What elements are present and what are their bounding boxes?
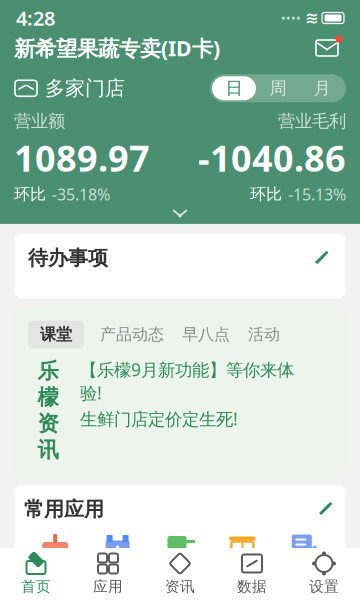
staticText: 4:28 xyxy=(16,5,55,31)
button[interactable]: 日 xyxy=(212,76,256,100)
button[interactable]: 产品动态 xyxy=(98,320,166,348)
button[interactable]: 调拨出库 xyxy=(149,531,211,585)
staticText: 调拨收货 xyxy=(88,567,148,585)
button[interactable]: 消息 xyxy=(308,32,346,64)
staticText: 乐檬 xyxy=(37,358,58,410)
button[interactable]: 月 xyxy=(300,76,344,100)
staticText: 营业额 xyxy=(14,111,65,132)
button[interactable]: 数据 xyxy=(216,546,288,600)
button[interactable]: 展开 xyxy=(0,205,360,224)
staticText: 产品动态 xyxy=(100,324,164,344)
staticText: 多家门店 xyxy=(45,76,125,101)
button[interactable]: 多家门店 xyxy=(14,74,125,103)
staticText: 环比 xyxy=(14,184,46,204)
staticText: •••• xyxy=(281,10,301,26)
staticText: -15.13% xyxy=(288,184,346,205)
staticText: 课堂 xyxy=(40,324,72,344)
staticText: 1089.97 xyxy=(14,134,150,182)
button[interactable]: 调拨收货 xyxy=(86,531,149,585)
button[interactable]: 乐檬 xyxy=(28,358,332,463)
staticText: 库存调整 xyxy=(212,567,272,585)
staticText: 应用 xyxy=(93,577,123,595)
button[interactable]: 编辑 xyxy=(310,247,332,269)
staticText: 【乐檬9月新功能】等你来体验! xyxy=(80,358,294,404)
button[interactable]: 早八点 xyxy=(180,320,232,348)
staticText: 生鲜门店定价定生死! xyxy=(80,407,238,430)
staticText: 周 xyxy=(269,78,286,99)
button[interactable]: 应用 xyxy=(72,546,144,600)
staticText: ≋ xyxy=(305,9,318,27)
staticText: 新希望果蔬专卖(ID卡) xyxy=(14,34,220,62)
button[interactable]: 库存盘点 xyxy=(274,531,336,585)
button[interactable]: 周 xyxy=(256,76,300,100)
staticText: 库存盘点 xyxy=(275,567,335,585)
button[interactable]: 待办事项 xyxy=(14,234,346,298)
staticText: 门店补货 xyxy=(25,567,85,585)
staticText: 常用应用 xyxy=(24,497,104,521)
staticText: 首页 xyxy=(21,577,51,595)
button[interactable]: 首页 xyxy=(0,546,72,600)
staticText: 资讯 xyxy=(165,577,195,595)
staticText: 环比 xyxy=(250,184,282,204)
button[interactable]: 活动 xyxy=(246,320,282,348)
staticText: 早八点 xyxy=(182,324,230,344)
staticText: 数据 xyxy=(237,577,267,595)
staticText: 活动 xyxy=(248,324,280,344)
staticText: 待办事项 xyxy=(28,246,108,270)
staticText: 月 xyxy=(313,78,330,99)
staticText: 调拨出库 xyxy=(150,567,210,585)
staticText: 营业毛利 xyxy=(278,111,346,132)
button[interactable]: 库存调整 xyxy=(211,531,274,585)
button[interactable]: 门店补货 xyxy=(24,531,86,585)
staticText: 日 xyxy=(225,78,242,99)
button[interactable]: 设置 xyxy=(288,546,360,600)
button[interactable]: 课堂 xyxy=(28,320,84,348)
staticText: 资讯 xyxy=(37,410,58,463)
staticText: -35.18% xyxy=(52,184,110,205)
button[interactable]: 资讯 xyxy=(144,546,216,600)
button[interactable]: 编辑 xyxy=(314,498,336,520)
staticText: -1040.86 xyxy=(198,134,346,182)
staticText: 设置 xyxy=(309,577,339,595)
